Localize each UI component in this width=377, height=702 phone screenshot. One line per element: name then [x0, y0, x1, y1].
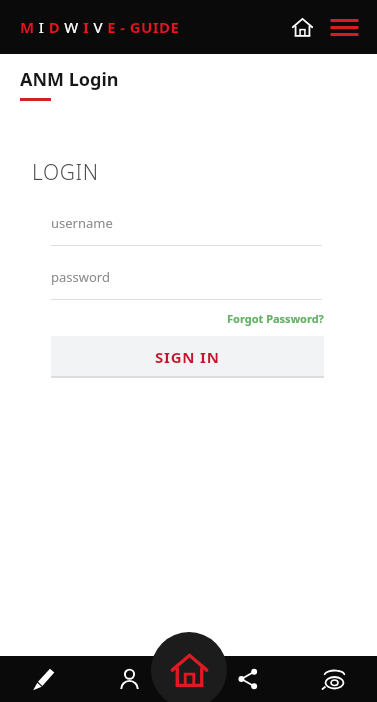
button[interactable]: Call	[291, 656, 377, 702]
staticText: Forgot Password?	[227, 311, 324, 326]
staticText: ANM Login	[20, 67, 119, 92]
staticText: LOGIN	[32, 158, 99, 187]
button[interactable]: SIGN IN	[51, 336, 324, 378]
staticText: SIGN IN	[155, 347, 220, 367]
button[interactable]: Home	[151, 632, 227, 702]
staticText: password	[51, 268, 110, 286]
button[interactable]: Menu	[323, 6, 365, 48]
button[interactable]: Share	[205, 656, 291, 702]
button[interactable]: Forgot Password?	[225, 310, 326, 327]
button[interactable]: username	[51, 214, 322, 246]
button[interactable]: password	[51, 268, 322, 300]
staticText: M I D W I V E - GUIDE	[20, 17, 180, 37]
button[interactable]: Profile	[86, 656, 172, 702]
staticText: username	[51, 214, 113, 232]
button[interactable]: Home	[281, 6, 323, 48]
button[interactable]: Edit	[0, 656, 86, 702]
